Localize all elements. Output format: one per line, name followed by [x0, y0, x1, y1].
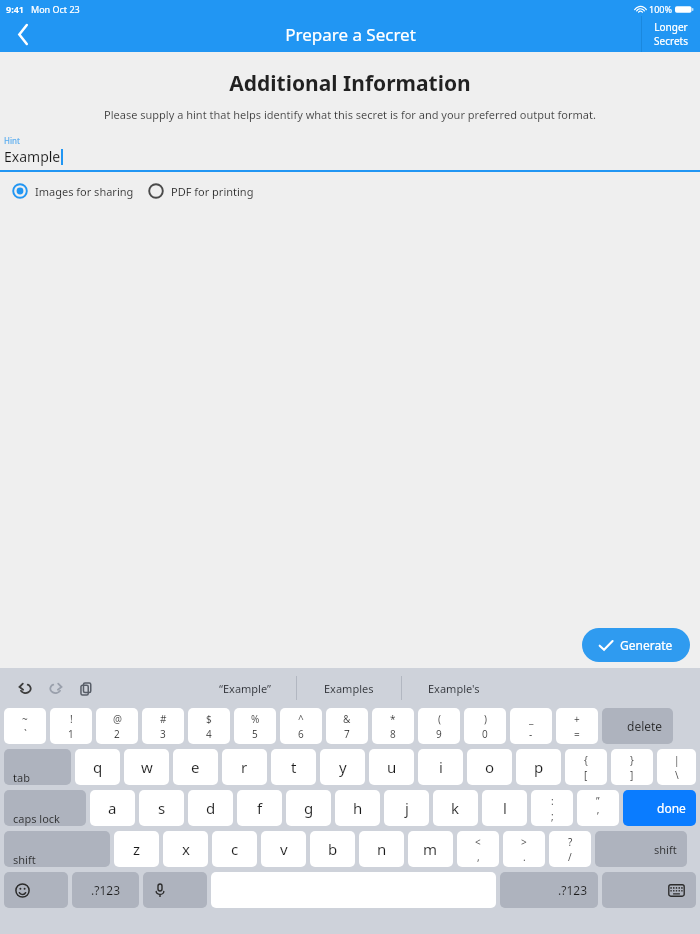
button[interactable]: } — [611, 749, 653, 785]
staticText: Generate — [620, 637, 673, 653]
button[interactable]: i — [418, 749, 463, 785]
staticText: Hint — [4, 135, 20, 146]
button[interactable]: f — [237, 790, 282, 826]
button[interactable]: Hint — [0, 135, 700, 172]
button[interactable]: ” — [577, 790, 619, 826]
staticText: e — [191, 757, 200, 777]
staticText: % — [251, 712, 260, 726]
button[interactable]: { — [565, 749, 607, 785]
button[interactable]: .?123 — [72, 872, 139, 908]
staticText: Longer — [654, 20, 688, 34]
button[interactable]: j — [384, 790, 429, 826]
button[interactable]: p — [516, 749, 561, 785]
button[interactable]: PDF for printing — [148, 183, 254, 199]
button[interactable]: ! — [50, 708, 92, 744]
button[interactable]: Examples — [297, 668, 401, 708]
button[interactable]: < — [457, 831, 499, 867]
button[interactable]: : — [531, 790, 573, 826]
button[interactable]: w — [124, 749, 169, 785]
staticText: [ — [584, 768, 588, 782]
staticText: q — [93, 757, 103, 777]
button[interactable]: Hide keyboard — [602, 872, 696, 908]
button[interactable]: m — [408, 831, 453, 867]
button[interactable]: @ — [96, 708, 138, 744]
button[interactable]: v — [261, 831, 306, 867]
button[interactable]: $ — [188, 708, 230, 744]
staticText: s — [158, 798, 166, 818]
button[interactable]: g — [286, 790, 331, 826]
staticText: Prepare a Secret — [285, 23, 416, 46]
staticText: Images for sharing — [35, 184, 134, 199]
staticText: Example's — [428, 681, 480, 696]
staticText: done — [657, 800, 686, 816]
staticText: ’ — [597, 809, 599, 823]
staticText: ~ — [22, 712, 28, 726]
button[interactable]: Images for sharing — [12, 183, 134, 199]
button[interactable]: b — [310, 831, 355, 867]
staticText: / — [568, 850, 572, 864]
staticText: # — [160, 712, 167, 726]
staticText: 9:41 — [6, 3, 24, 15]
button[interactable]: delete — [602, 708, 673, 744]
staticText: ? — [568, 835, 573, 849]
staticText: Please supply a hint that helps identify… — [16, 107, 684, 122]
button[interactable]: Back — [0, 16, 46, 52]
button[interactable]: y — [320, 749, 365, 785]
button[interactable]: caps lock — [4, 790, 86, 826]
staticText: l — [503, 798, 507, 818]
button[interactable]: done — [623, 790, 696, 826]
staticText: ; — [551, 809, 554, 823]
button[interactable]: n — [359, 831, 404, 867]
button[interactable]: ? — [549, 831, 591, 867]
button[interactable]: r — [222, 749, 267, 785]
button[interactable]: l — [482, 790, 527, 826]
button[interactable]: a — [90, 790, 135, 826]
button[interactable]: k — [433, 790, 478, 826]
button[interactable]: .?123 — [500, 872, 598, 908]
button[interactable]: tab — [4, 749, 71, 785]
button[interactable]: Generate — [582, 628, 690, 662]
staticText: 9 — [436, 727, 442, 741]
button[interactable]: o — [467, 749, 512, 785]
button[interactable]: * — [372, 708, 414, 744]
staticText: b — [328, 839, 338, 859]
button[interactable]: shift — [595, 831, 687, 867]
button[interactable]: Longer — [642, 16, 700, 52]
button[interactable]: x — [163, 831, 208, 867]
button[interactable]: Paste — [72, 675, 99, 702]
button[interactable]: _ — [510, 708, 552, 744]
staticText: 5 — [252, 727, 258, 741]
button[interactable]: z — [114, 831, 159, 867]
button[interactable]: d — [188, 790, 233, 826]
button[interactable]: e — [173, 749, 218, 785]
button[interactable]: s — [139, 790, 184, 826]
button[interactable]: % — [234, 708, 276, 744]
button[interactable]: c — [212, 831, 257, 867]
button[interactable]: ( — [418, 708, 460, 744]
button[interactable]: ~ — [4, 708, 46, 744]
button[interactable]: shift — [4, 831, 110, 867]
button[interactable]: | — [657, 749, 696, 785]
button[interactable]: Redo — [42, 675, 69, 702]
staticText: p — [534, 757, 544, 777]
button[interactable]: h — [335, 790, 380, 826]
button[interactable]: u — [369, 749, 414, 785]
staticText: = — [574, 727, 580, 741]
staticText: v — [280, 839, 288, 859]
button[interactable]: Dictate — [143, 872, 207, 908]
button[interactable]: ) — [464, 708, 506, 744]
button[interactable]: > — [503, 831, 545, 867]
button[interactable]: # — [142, 708, 184, 744]
staticText: $ — [206, 712, 212, 726]
staticText: . — [523, 850, 526, 864]
button[interactable]: & — [326, 708, 368, 744]
button[interactable]: q — [75, 749, 120, 785]
button[interactable]: + — [556, 708, 598, 744]
button[interactable]: t — [271, 749, 316, 785]
button[interactable]: “Example” — [194, 668, 296, 708]
button[interactable]: Undo — [12, 675, 39, 702]
button[interactable]: Emoji — [4, 872, 68, 908]
button[interactable]: Example's — [402, 668, 506, 708]
button[interactable]: ^ — [280, 708, 322, 744]
